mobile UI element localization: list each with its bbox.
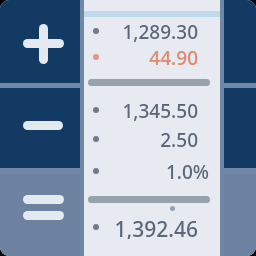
button[interactable]: Multiply [224, 0, 256, 83]
button[interactable]: Clear [224, 174, 256, 256]
staticText: 44.90 [99, 45, 198, 69]
staticText: 1,345.50 [99, 98, 198, 122]
button[interactable]: 1.0% [84, 159, 220, 183]
button[interactable]: Equals [0, 174, 80, 256]
button[interactable]: Subtract [0, 88, 80, 168]
button[interactable]: 2.50 [84, 127, 220, 151]
button[interactable]: 1,289.30 [84, 19, 220, 43]
button[interactable]: 1,345.50 [84, 98, 220, 122]
button[interactable]: 1,392.46 [84, 215, 220, 239]
staticText: 1.0% [99, 159, 209, 183]
staticText: 1,392.46 [99, 215, 198, 239]
button[interactable]: Add [0, 0, 80, 83]
staticText: 1,289.30 [99, 19, 198, 43]
staticText: 2.50 [99, 127, 198, 151]
button[interactable]: 44.90 [84, 45, 220, 69]
